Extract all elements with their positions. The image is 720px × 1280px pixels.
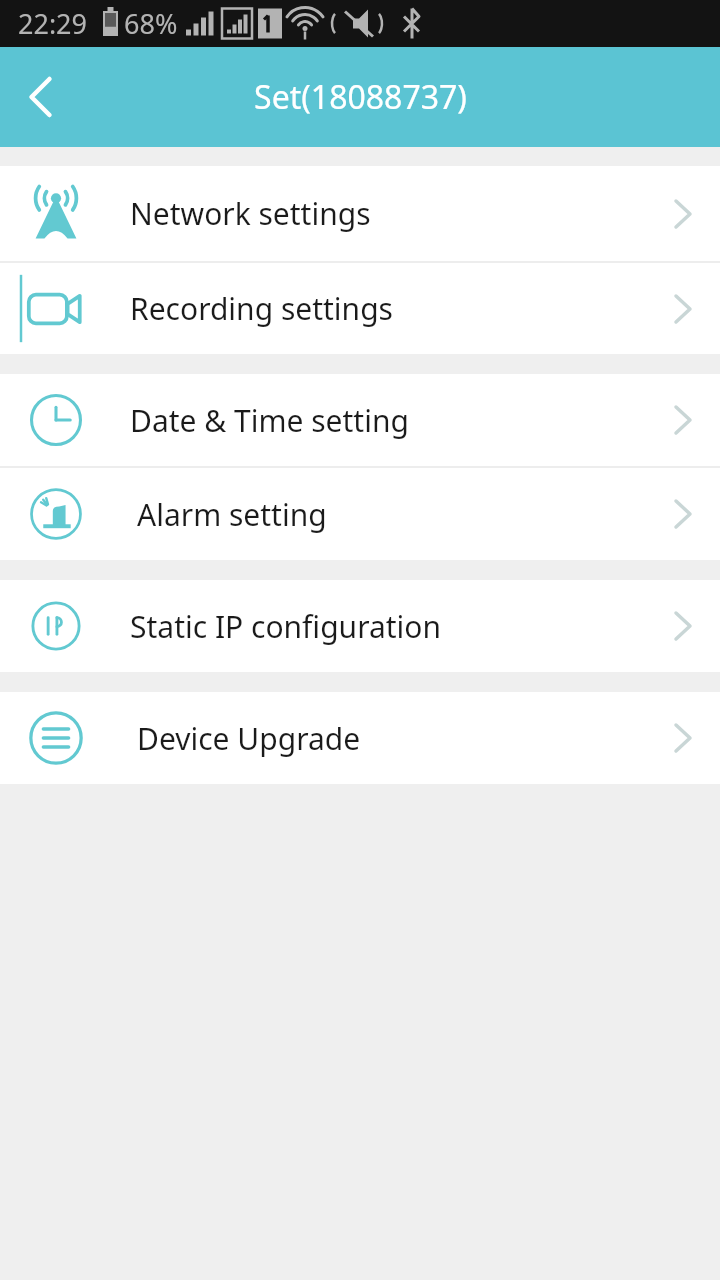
staticText: Set(18088737) [254, 75, 467, 119]
staticText: Device Upgrade [137, 718, 361, 759]
button[interactable]: Recording settings [0, 263, 720, 354]
staticText: Network settings [130, 193, 371, 234]
button[interactable]: Network settings [0, 166, 720, 261]
staticText: Date & Time setting [130, 400, 409, 441]
button[interactable]: Static IP configuration [0, 580, 720, 672]
button[interactable]: Back [0, 53, 88, 141]
button[interactable]: Device Upgrade [0, 692, 720, 784]
staticText: Static IP configuration [130, 606, 442, 647]
staticText: 68% [124, 5, 178, 42]
staticText: 22:29 [18, 5, 88, 42]
button[interactable]: Alarm setting [0, 468, 720, 560]
staticText: Alarm setting [137, 494, 327, 535]
button[interactable]: Date & Time setting [0, 374, 720, 466]
staticText: Recording settings [130, 288, 393, 329]
